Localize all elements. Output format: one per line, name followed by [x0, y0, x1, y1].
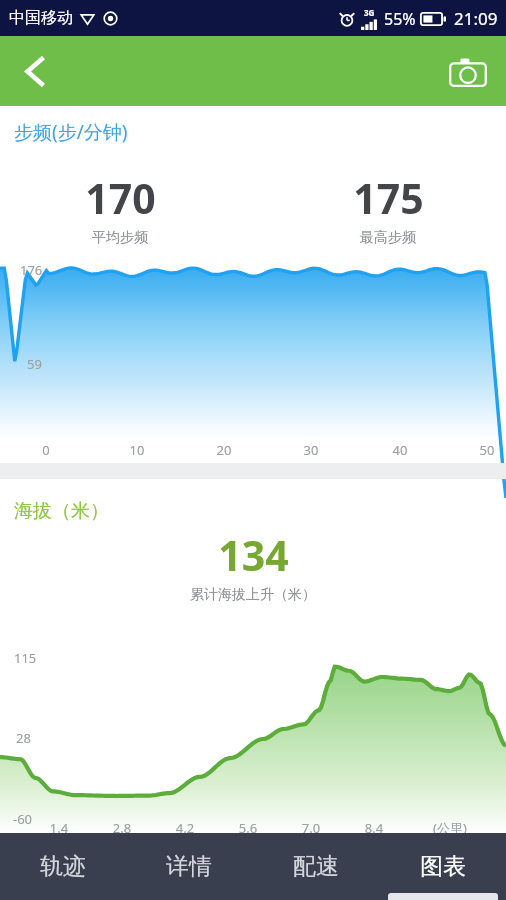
staticText: 134	[218, 527, 289, 583]
staticText: 配速	[293, 852, 339, 881]
button[interactable]: 配速	[252, 833, 379, 900]
staticText: 28	[16, 729, 31, 747]
button[interactable]: Back	[8, 44, 62, 98]
staticText: 59	[27, 355, 42, 373]
staticText: 最高步频	[360, 229, 416, 247]
staticText: 176	[20, 261, 43, 279]
staticText: 10	[107, 441, 167, 459]
staticText: 21:09	[454, 7, 498, 30]
staticText: 步频(步/分钟)	[14, 119, 128, 145]
button[interactable]: 图表	[379, 833, 506, 900]
staticText: 170	[85, 170, 156, 226]
staticText: 4.2	[155, 819, 215, 837]
staticText: (公里)	[420, 819, 480, 837]
staticText: -60	[13, 810, 33, 828]
staticText: 5.6	[218, 819, 278, 837]
staticText: 40	[370, 441, 430, 459]
button[interactable]: Camera	[442, 45, 494, 97]
staticText: 7.0	[281, 819, 341, 837]
staticText: 轨迹	[40, 852, 86, 881]
staticText: 平均步频	[92, 229, 148, 247]
staticText: 1.4	[29, 819, 89, 837]
staticText: 8.4	[344, 819, 404, 837]
staticText: 累计海拔上升（米）	[190, 586, 316, 604]
staticText: 海拔（米）	[14, 499, 109, 523]
button[interactable]: 轨迹	[0, 833, 126, 900]
staticText: 20	[194, 441, 254, 459]
staticText: 30	[281, 441, 341, 459]
staticText: 55%	[384, 8, 416, 30]
button[interactable]: 详情	[126, 833, 252, 900]
staticText: 175	[353, 170, 424, 226]
staticText: 中国移动	[9, 8, 73, 28]
staticText: 50	[457, 441, 506, 459]
staticText: 115	[14, 649, 37, 667]
staticText: 3G	[364, 7, 375, 18]
staticText: 详情	[166, 852, 212, 881]
staticText: 0	[16, 441, 76, 459]
staticText: 图表	[420, 852, 466, 881]
staticText: 2.8	[92, 819, 152, 837]
